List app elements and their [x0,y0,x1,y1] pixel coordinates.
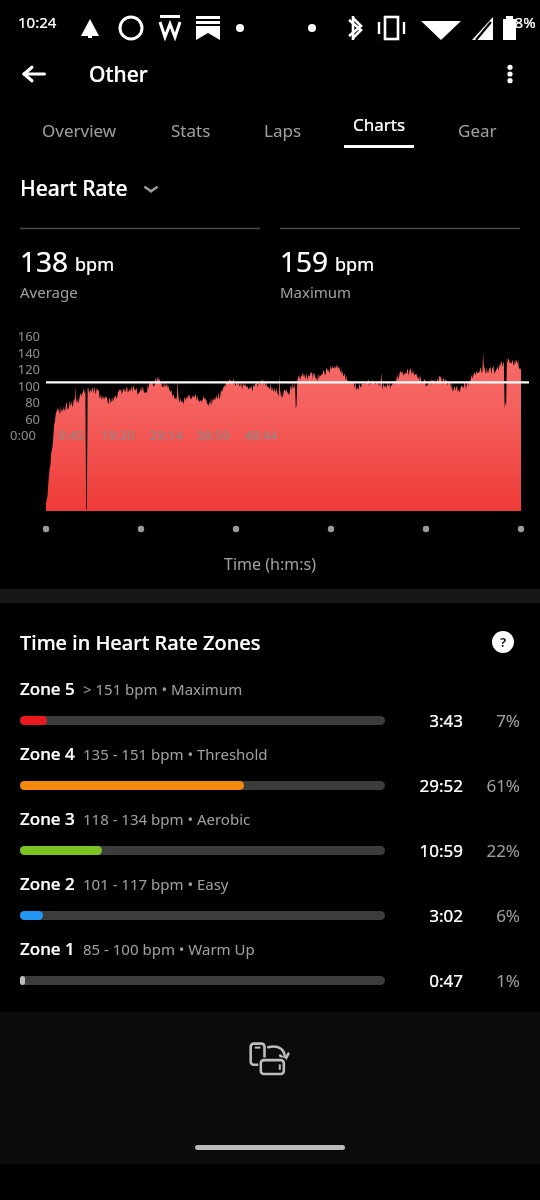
staticText: bpm [335,252,374,277]
staticText: ? [500,633,507,651]
staticText: Laps [264,119,302,142]
staticText: 60 [0,410,40,428]
staticText: 0:00 [0,426,49,444]
staticText: 29:14 [140,426,192,444]
staticText: 7% [463,709,520,732]
staticText: Time (h:m:s) [0,553,540,575]
button[interactable]: Zone 5 [0,677,540,742]
staticText: 6% [463,904,520,927]
staticText: 22% [463,839,520,862]
staticText: 10:59 [385,839,463,862]
button[interactable]: Zone 4 [0,742,540,807]
staticText: 1% [463,969,520,992]
staticText: 3:02 [385,904,463,927]
button[interactable]: Zone 3 [0,807,540,872]
staticText: 85 - 100 bpm • Warm Up [83,939,255,959]
button[interactable]: Gear [431,102,524,158]
staticText: 48:44 [235,426,287,444]
button[interactable]: Zone 2 [0,872,540,937]
button[interactable]: More options [486,50,534,98]
button[interactable]: Stats [143,102,238,158]
staticText: 138 [20,242,69,280]
button[interactable]: Rotate device [242,1034,298,1090]
staticText: Zone 3 [20,807,75,830]
staticText: 80 [0,393,40,411]
staticText: Other [89,60,148,89]
staticText: 29:52 [385,774,463,797]
staticText: Time in Heart Rate Zones [20,629,261,656]
button[interactable]: Back [10,50,58,98]
staticText: 88% [506,12,536,32]
staticText: 101 - 117 bpm • Easy [83,874,229,894]
button[interactable]: Heart Rate [20,174,540,203]
button[interactable]: Overview [16,102,143,158]
button[interactable]: Charts [327,102,431,158]
staticText: Overview [42,119,117,142]
staticText: Zone 4 [20,742,75,765]
staticText: > 151 bpm • Maximum [83,679,243,699]
staticText: Maximum [280,282,352,302]
staticText: 160 [0,327,40,345]
staticText: 140 [0,344,40,362]
staticText: 100 [0,377,40,395]
staticText: Charts [353,113,406,136]
staticText: Heart Rate [20,174,128,203]
staticText: 61% [463,774,520,797]
staticText: 120 [0,360,40,378]
staticText: 159 [280,242,329,280]
staticText: Stats [171,119,211,142]
staticText: Zone 1 [20,937,75,960]
staticText: bpm [75,252,114,277]
staticText: 135 - 151 bpm • Threshold [83,744,268,764]
staticText: 3:43 [385,709,463,732]
staticText: Gear [458,119,497,142]
staticText: 0:47 [385,969,463,992]
staticText: Zone 2 [20,872,75,895]
button[interactable]: Zone 1 [0,937,540,1002]
button[interactable]: Laps [238,102,327,158]
staticText: 10:24 [18,12,57,32]
staticText: 118 - 134 bpm • Aerobic [83,809,251,829]
staticText: 19:30 [92,426,144,444]
staticText: 38:59 [187,426,239,444]
staticText: 9:45 [45,426,97,444]
staticText: Zone 5 [20,677,75,700]
button[interactable]: Help [486,625,520,659]
staticText: Average [20,282,78,302]
